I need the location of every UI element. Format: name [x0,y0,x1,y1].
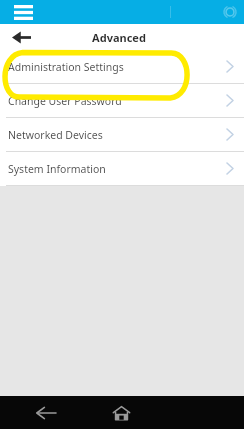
staticText: System Information [8,162,106,176]
staticText: Advanced [92,30,146,45]
button[interactable]: Administration Settings [0,50,244,83]
staticText: Networked Devices [8,128,103,142]
button[interactable]: Home [102,396,140,429]
button[interactable]: Menu [10,0,36,24]
button[interactable]: Networked Devices [0,118,244,151]
staticText: Change User Password [8,94,122,108]
staticText: Administration Settings [8,60,124,74]
button[interactable]: Change User Password [0,84,244,117]
button[interactable]: Back [0,24,42,50]
button[interactable]: Back [26,396,66,429]
button[interactable]: System Information [0,152,244,185]
